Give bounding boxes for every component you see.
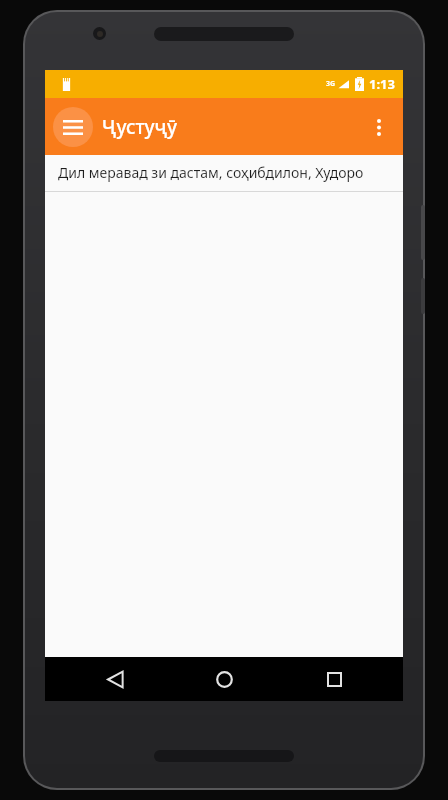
button[interactable]: Дил меравад зи дастам, соҳибдилон, Худор… — [45, 155, 403, 191]
button[interactable]: Back — [75, 657, 155, 701]
staticText: 3G — [326, 79, 336, 89]
staticText: Дил меравад зи дастам, соҳибдилон, Худор… — [58, 163, 364, 182]
staticText: 1:13 — [369, 75, 395, 93]
button[interactable]: Recent apps — [294, 657, 374, 701]
button[interactable]: Open navigation menu — [53, 107, 93, 147]
button[interactable]: Home — [184, 657, 264, 701]
staticText: Ҷустуҷӯ — [102, 114, 177, 140]
button[interactable]: More options — [359, 107, 399, 147]
